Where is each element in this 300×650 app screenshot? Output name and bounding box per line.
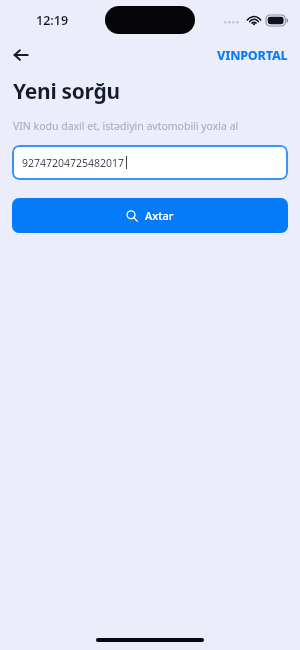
staticText: 92747204725482017 xyxy=(22,156,125,170)
button[interactable]: Back xyxy=(6,40,36,70)
button[interactable]: Axtar xyxy=(12,198,288,233)
button[interactable]: VINPORTAL xyxy=(213,45,292,66)
staticText: Yeni sorğu xyxy=(13,77,120,106)
staticText: 12:19 xyxy=(36,12,69,29)
staticText: Axtar xyxy=(145,208,174,223)
staticText: VIN kodu daxil et, istədiyin avtomobili … xyxy=(13,119,239,133)
staticText: VINPORTAL xyxy=(217,47,288,64)
button[interactable]: 92747204725482017 xyxy=(12,145,288,180)
